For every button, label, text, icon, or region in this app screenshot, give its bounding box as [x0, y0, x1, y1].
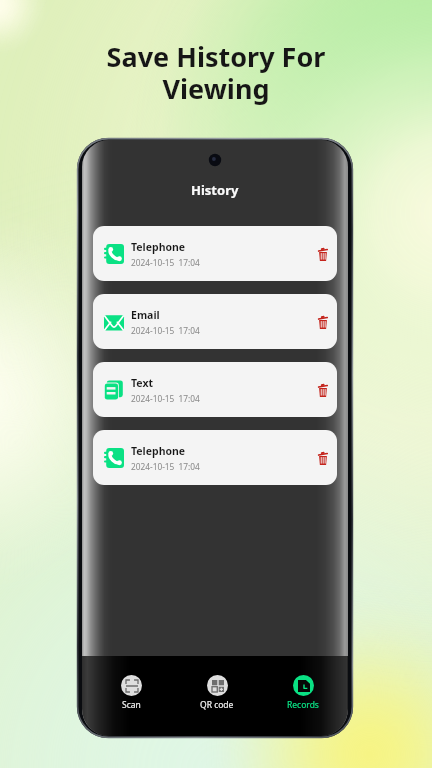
button[interactable]: QR code [174, 656, 260, 711]
staticText: QR code [200, 699, 234, 711]
staticText: Telephone [131, 444, 186, 458]
button[interactable]: Email [93, 294, 337, 349]
button[interactable]: Text [93, 362, 337, 417]
staticText: 2024-10-15 17:04 [131, 393, 200, 404]
staticText: 2024-10-15 17:04 [131, 461, 200, 472]
staticText: Scan [122, 699, 141, 711]
button[interactable]: Telephone [93, 226, 337, 281]
staticText: Telephone [131, 240, 186, 254]
button[interactable]: Delete record [311, 446, 335, 470]
staticText: 2024-10-15 17:04 [131, 257, 200, 268]
button[interactable]: Delete record [311, 310, 335, 334]
staticText: 2024-10-15 17:04 [131, 325, 200, 336]
button[interactable]: Delete record [311, 242, 335, 266]
staticText: Records [287, 699, 319, 711]
staticText: Text [131, 376, 154, 390]
staticText: History [191, 181, 239, 199]
button[interactable]: Scan [88, 656, 174, 711]
button[interactable]: Records [260, 656, 346, 711]
button[interactable]: Telephone [93, 430, 337, 485]
button[interactable]: Delete record [311, 378, 335, 402]
staticText: Save History For Viewing [0, 38, 432, 107]
staticText: Email [131, 308, 160, 322]
